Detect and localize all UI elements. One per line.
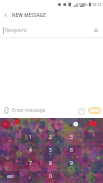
button[interactable]: . (61, 170, 82, 183)
button[interactable]: key (82, 144, 103, 157)
staticText: 0 (49, 173, 52, 180)
staticText: 12:12 (92, 2, 102, 7)
button[interactable]: 8 (40, 157, 61, 170)
button[interactable]: Attach (1, 105, 12, 116)
staticText: SEND (90, 108, 100, 113)
button[interactable]: key (0, 131, 20, 144)
staticText: NEW MESSAGE (12, 12, 46, 18)
staticText: 9 (70, 160, 73, 167)
staticText: 4 (29, 147, 32, 154)
button[interactable]: ABC (0, 170, 20, 183)
staticText: Recipient (5, 27, 27, 34)
staticText: ABC (7, 174, 14, 179)
staticText: 6 (70, 147, 73, 154)
button[interactable]: 3 (61, 131, 82, 144)
button[interactable]: key (0, 144, 20, 157)
button[interactable]: SEND (88, 107, 101, 114)
staticText: , (29, 173, 31, 180)
staticText: Enter message (12, 107, 46, 114)
button[interactable]: Stickers (76, 106, 86, 116)
button[interactable]: 1 (20, 131, 40, 144)
button[interactable]: 2 (40, 131, 61, 144)
button[interactable]: , (20, 170, 40, 183)
staticText: 8 (49, 160, 52, 167)
button[interactable]: key (82, 131, 103, 144)
staticText: 100% (78, 2, 88, 7)
button[interactable]: key (82, 157, 103, 170)
button[interactable]: 9 (61, 157, 82, 170)
staticText: 7 (29, 160, 32, 167)
button[interactable]: Contacts (90, 25, 101, 36)
staticText: 5 (49, 147, 52, 154)
staticText: 2 (49, 134, 52, 141)
staticText: 3 (70, 134, 73, 141)
button[interactable]: key (0, 157, 20, 170)
button[interactable]: 0 (40, 170, 61, 183)
button[interactable]: 4 (20, 144, 40, 157)
staticText: 1 (29, 134, 32, 141)
button[interactable]: 5 (40, 144, 61, 157)
button[interactable]: key (82, 170, 103, 183)
button[interactable]: Navigate up (0, 9, 12, 21)
button[interactable]: 6 (61, 144, 82, 157)
staticText: . (71, 173, 73, 180)
button[interactable]: 7 (20, 157, 40, 170)
